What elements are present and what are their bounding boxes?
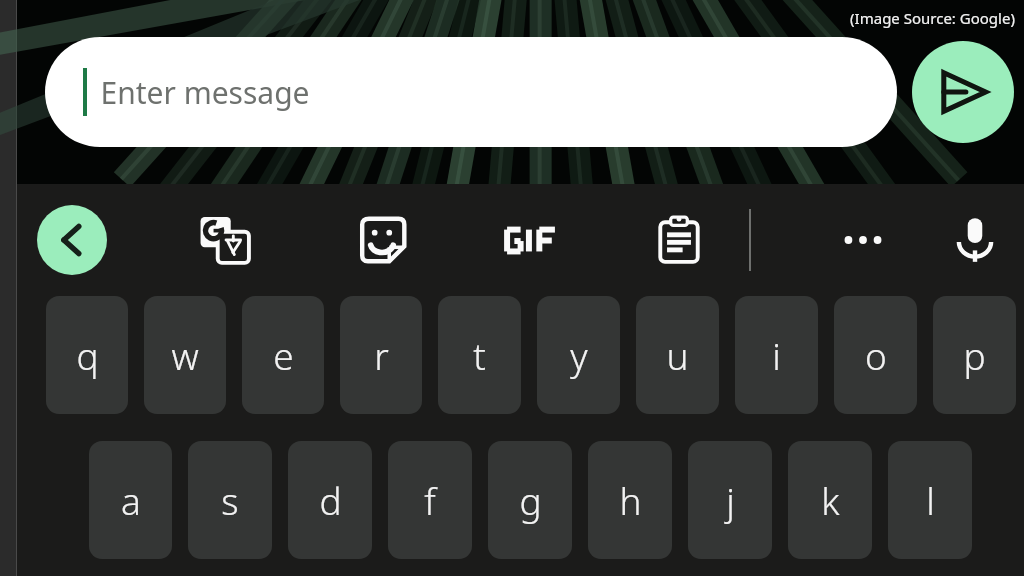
button[interactable]: e <box>242 296 324 414</box>
button[interactable]: t <box>438 296 521 414</box>
staticText: (Image Source: Google) <box>850 8 1015 28</box>
button[interactable]: Translate <box>189 204 261 276</box>
button[interactable]: j <box>688 441 772 559</box>
button[interactable]: f <box>388 441 472 559</box>
button[interactable]: a <box>89 441 172 559</box>
staticText: g <box>519 475 542 525</box>
button[interactable]: Back <box>37 205 107 275</box>
staticText: p <box>963 330 986 380</box>
staticText: i <box>772 330 781 380</box>
button[interactable]: y <box>537 296 620 414</box>
button[interactable]: u <box>636 296 719 414</box>
button[interactable]: Send <box>912 41 1014 143</box>
staticText: k <box>821 475 840 525</box>
button[interactable]: p <box>933 296 1016 414</box>
button[interactable]: More options <box>827 204 899 276</box>
button[interactable]: r <box>340 296 422 414</box>
button[interactable]: g <box>488 441 572 559</box>
staticText: f <box>424 475 436 525</box>
button[interactable]: l <box>888 441 972 559</box>
button[interactable]: q <box>46 296 128 414</box>
staticText: l <box>926 475 935 525</box>
button[interactable]: i <box>735 296 818 414</box>
button[interactable]: o <box>834 296 917 414</box>
button[interactable]: Enter message <box>45 37 897 147</box>
button[interactable]: Stickers <box>347 204 419 276</box>
button[interactable]: k <box>788 441 872 559</box>
button[interactable]: Clipboard <box>643 204 715 276</box>
staticText: w <box>171 330 199 380</box>
staticText: y <box>570 330 588 380</box>
staticText: d <box>319 475 342 525</box>
staticText: e <box>273 330 294 380</box>
button[interactable]: h <box>588 441 672 559</box>
button[interactable]: w <box>144 296 226 414</box>
staticText: r <box>374 330 389 380</box>
button[interactable]: Voice input <box>939 204 1011 276</box>
button[interactable]: GIF <box>495 204 567 276</box>
staticText: Enter message <box>100 72 310 113</box>
staticText: j <box>726 475 735 525</box>
staticText: h <box>619 475 642 525</box>
staticText: t <box>473 330 486 380</box>
staticText: u <box>666 330 689 380</box>
staticText: s <box>221 475 239 525</box>
button[interactable]: s <box>188 441 272 559</box>
staticText: a <box>121 475 141 525</box>
button[interactable]: d <box>288 441 372 559</box>
staticText: o <box>865 330 887 380</box>
staticText: q <box>76 330 99 380</box>
